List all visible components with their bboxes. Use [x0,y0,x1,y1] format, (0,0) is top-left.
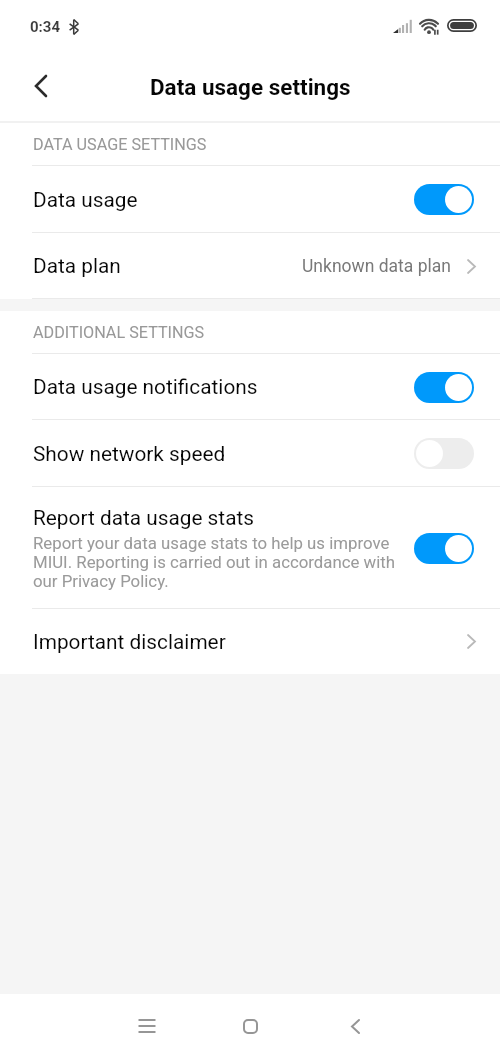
staticText: 0:34 [30,19,61,35]
staticText: Data usage notifications [33,375,258,399]
staticText: Report data usage stats [33,506,254,530]
button[interactable]: Switch on [414,184,474,215]
staticText: Data usage settings [150,74,351,100]
staticText: DATA USAGE SETTINGS [33,137,207,154]
button[interactable]: Data usage notifications [0,354,500,420]
staticText: Show network speed [33,442,226,466]
button[interactable]: Data plan [0,233,500,299]
button[interactable]: Switch on [414,372,474,403]
staticText: ADDITIONAL SETTINGS [33,325,205,342]
button[interactable]: Home [220,996,280,1056]
button[interactable]: Data usage [0,166,500,233]
button[interactable]: Report data usage stats [0,487,500,609]
button[interactable]: Back [13,58,69,114]
staticText: Unknown data plan [302,256,451,276]
button[interactable]: Switch off [414,438,474,469]
staticText: Important disclaimer [33,630,467,654]
button[interactable]: Switch on [414,533,474,564]
button[interactable]: Recent apps [117,996,177,1056]
button[interactable]: Show network speed [0,420,500,487]
staticText: Data usage [33,188,138,212]
button[interactable]: Back [325,996,385,1056]
button[interactable]: Important disclaimer [0,609,500,674]
staticText: Data plan [33,254,302,278]
staticText: Report your data usage stats to help us … [33,534,396,591]
